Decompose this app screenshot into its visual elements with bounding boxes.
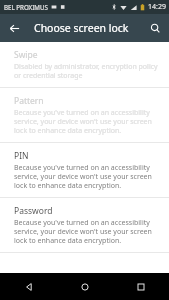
button[interactable]: Swipe (0, 42, 169, 87)
button[interactable]: Password (0, 198, 169, 252)
staticText: Because you've turned on an accessibilit… (14, 163, 159, 190)
button[interactable]: Navigate up (0, 14, 28, 42)
button[interactable]: Pattern (0, 88, 169, 142)
staticText: Disabled by administrator, encryption po… (14, 62, 159, 80)
button[interactable]: Home (57, 273, 113, 300)
button[interactable]: Back (0, 273, 57, 300)
staticText: Swipe (14, 49, 38, 60)
staticText: Pattern (14, 95, 44, 106)
staticText: 14:29 (148, 2, 166, 12)
staticText: BEL PROXIMUS (4, 3, 48, 11)
button[interactable]: Search (141, 14, 169, 42)
staticText: Password (14, 205, 53, 216)
button[interactable]: PIN (0, 143, 169, 197)
staticText: PIN (14, 150, 29, 161)
staticText: Because you've turned on an accessibilit… (14, 108, 159, 135)
staticText: Because you've turned on an accessibilit… (14, 218, 159, 245)
button[interactable]: Recent apps (113, 273, 169, 300)
staticText: Choose screen lock (34, 21, 141, 35)
